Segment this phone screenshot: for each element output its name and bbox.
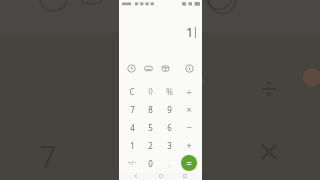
button[interactable]: Keyboard (143, 63, 154, 74)
button[interactable]: 2 (141, 136, 160, 154)
staticText: 9 (167, 104, 172, 115)
staticText: 7 (33, 136, 63, 177)
staticText: % (166, 86, 173, 97)
button[interactable]: 8 (141, 100, 160, 118)
button[interactable]: . (160, 154, 179, 172)
button[interactable]: 4 (123, 118, 141, 136)
button[interactable]: () (141, 82, 160, 100)
staticText: 4 (130, 122, 135, 133)
button[interactable]: × (179, 100, 198, 118)
button[interactable]: Scientific (160, 63, 171, 74)
staticText: + (186, 139, 192, 151)
button[interactable]: Info (184, 63, 195, 74)
button[interactable]: + (179, 136, 198, 154)
staticText: − (186, 121, 192, 133)
staticText: 1 (130, 140, 135, 151)
button[interactable]: 5 (141, 118, 160, 136)
staticText: ✕ (254, 136, 284, 169)
button[interactable]: 6 (160, 118, 179, 136)
staticText: = (186, 157, 192, 169)
button[interactable]: 9 (160, 100, 179, 118)
staticText: 1 (186, 23, 194, 41)
staticText: 6 (167, 122, 172, 133)
button[interactable]: +/− (123, 154, 141, 172)
button[interactable]: History (126, 63, 137, 74)
button[interactable]: ÷ (179, 82, 198, 100)
staticText: 0 (148, 158, 153, 169)
button[interactable]: − (179, 118, 198, 136)
button[interactable]: 3 (160, 136, 179, 154)
button[interactable]: C (123, 82, 141, 100)
button[interactable]: Back (128, 172, 144, 180)
staticText: ÷ (186, 85, 192, 97)
button[interactable]: = (181, 155, 197, 171)
staticText: . (168, 158, 171, 169)
staticText: +/− (127, 159, 137, 167)
staticText: 5 (148, 122, 153, 133)
button[interactable]: 7 (123, 100, 141, 118)
staticText: 8 (148, 104, 153, 115)
staticText: × (186, 103, 192, 115)
staticText: 2 (148, 140, 153, 151)
button[interactable]: Home (153, 172, 169, 180)
staticText: () (148, 86, 153, 96)
button[interactable]: Recents (177, 172, 193, 180)
button[interactable]: 0 (141, 154, 160, 172)
staticText: 3 (167, 140, 172, 151)
button[interactable]: 1 (123, 136, 141, 154)
staticText: 7 (130, 104, 135, 115)
button[interactable]: % (160, 82, 179, 100)
staticText: C (129, 86, 135, 97)
